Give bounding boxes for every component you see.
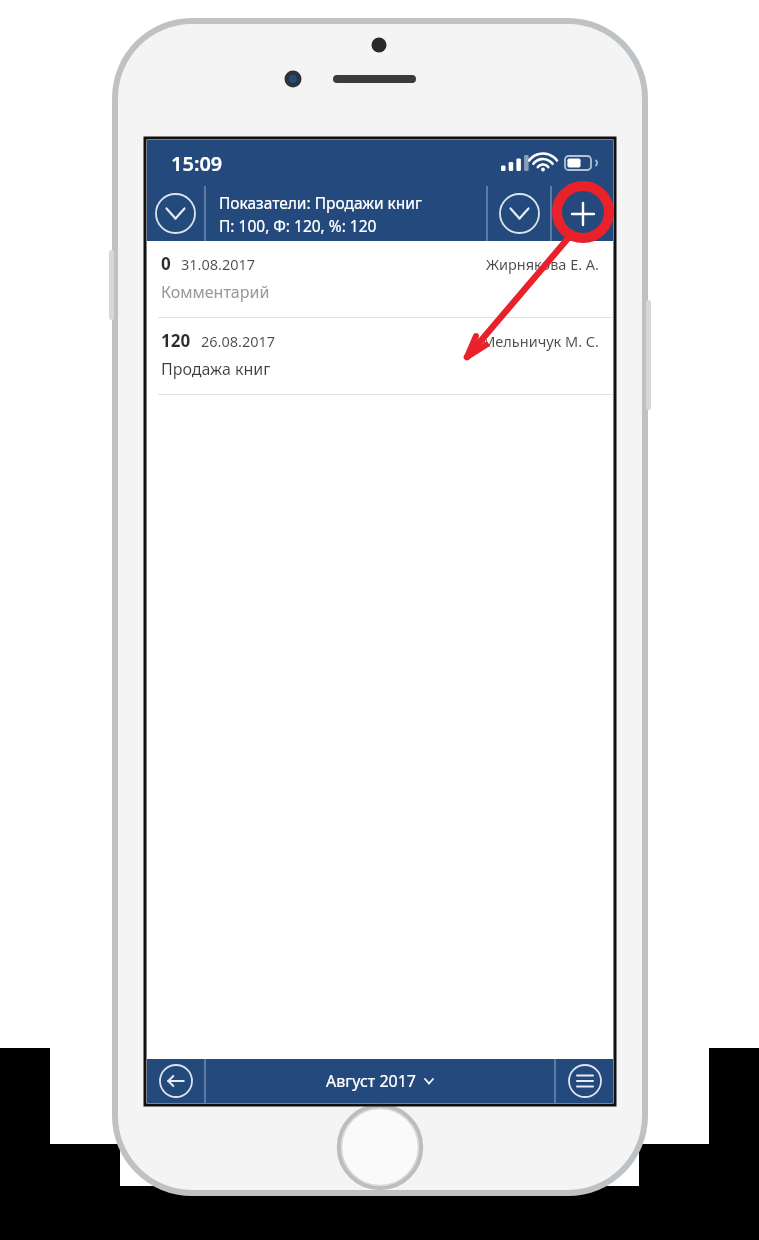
staticText: 0: [161, 252, 171, 275]
button[interactable]: Меню: [556, 1059, 613, 1103]
button[interactable]: 120: [147, 318, 613, 394]
staticText: 31.08.2017: [181, 254, 256, 274]
button[interactable]: Показатели: Продажи книг: [206, 186, 486, 241]
button[interactable]: Август 2017: [206, 1059, 554, 1103]
staticText: 26.08.2017: [201, 331, 276, 351]
button[interactable]: Назад: [147, 1059, 204, 1103]
staticText: П: 100, Ф: 120, %: 120: [219, 215, 377, 236]
button[interactable]: Выбрать период: [488, 186, 550, 241]
staticText: Показатели: Продажи книг: [219, 192, 422, 213]
staticText: Жирнякова Е. А.: [485, 254, 599, 274]
staticText: Август 2017: [326, 1070, 417, 1092]
staticText: Продажа книг: [161, 358, 271, 380]
staticText: Мельничук М. С.: [482, 331, 599, 351]
staticText: Комментарий: [161, 281, 270, 303]
staticText: 15:09: [171, 150, 223, 177]
button[interactable]: Добавить: [552, 186, 613, 241]
button[interactable]: 0: [147, 241, 613, 317]
button[interactable]: Раскрыть: [147, 186, 204, 241]
staticText: 120: [161, 329, 191, 352]
